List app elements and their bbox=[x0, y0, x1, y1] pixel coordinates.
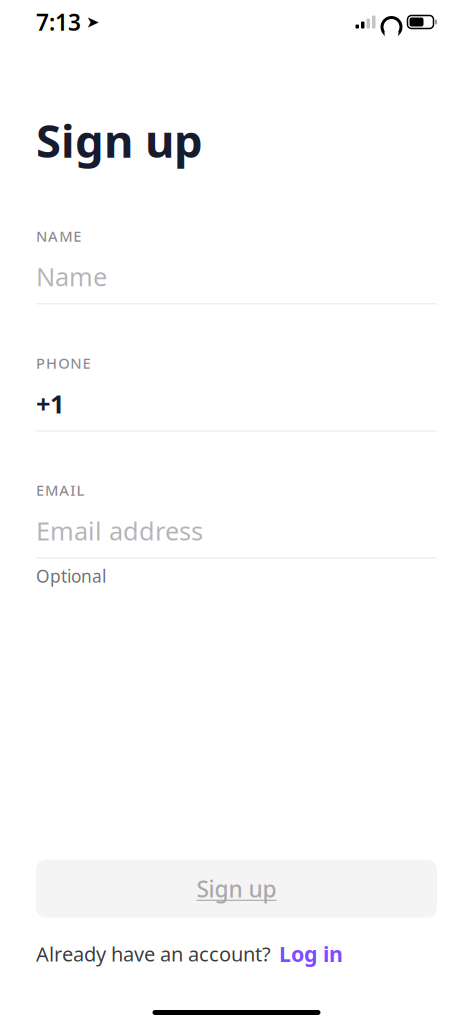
staticText: Log in bbox=[279, 940, 343, 968]
staticText: Already have an account? bbox=[36, 941, 271, 967]
button[interactable]: Log in bbox=[279, 940, 343, 968]
staticText: Email address bbox=[36, 514, 203, 547]
staticText: EMAIL bbox=[36, 480, 84, 500]
staticText: ➤ bbox=[86, 13, 99, 31]
staticText: Sign up bbox=[36, 110, 203, 170]
button[interactable]: Sign up bbox=[36, 860, 437, 918]
staticText: Optional bbox=[36, 565, 106, 588]
staticText: PHONE bbox=[36, 353, 90, 373]
staticText: Sign up bbox=[196, 874, 276, 904]
staticText: 7:13 bbox=[36, 7, 81, 37]
staticText: Name bbox=[36, 260, 107, 293]
staticText: NAME bbox=[36, 226, 81, 246]
staticText: +1 bbox=[36, 387, 64, 420]
